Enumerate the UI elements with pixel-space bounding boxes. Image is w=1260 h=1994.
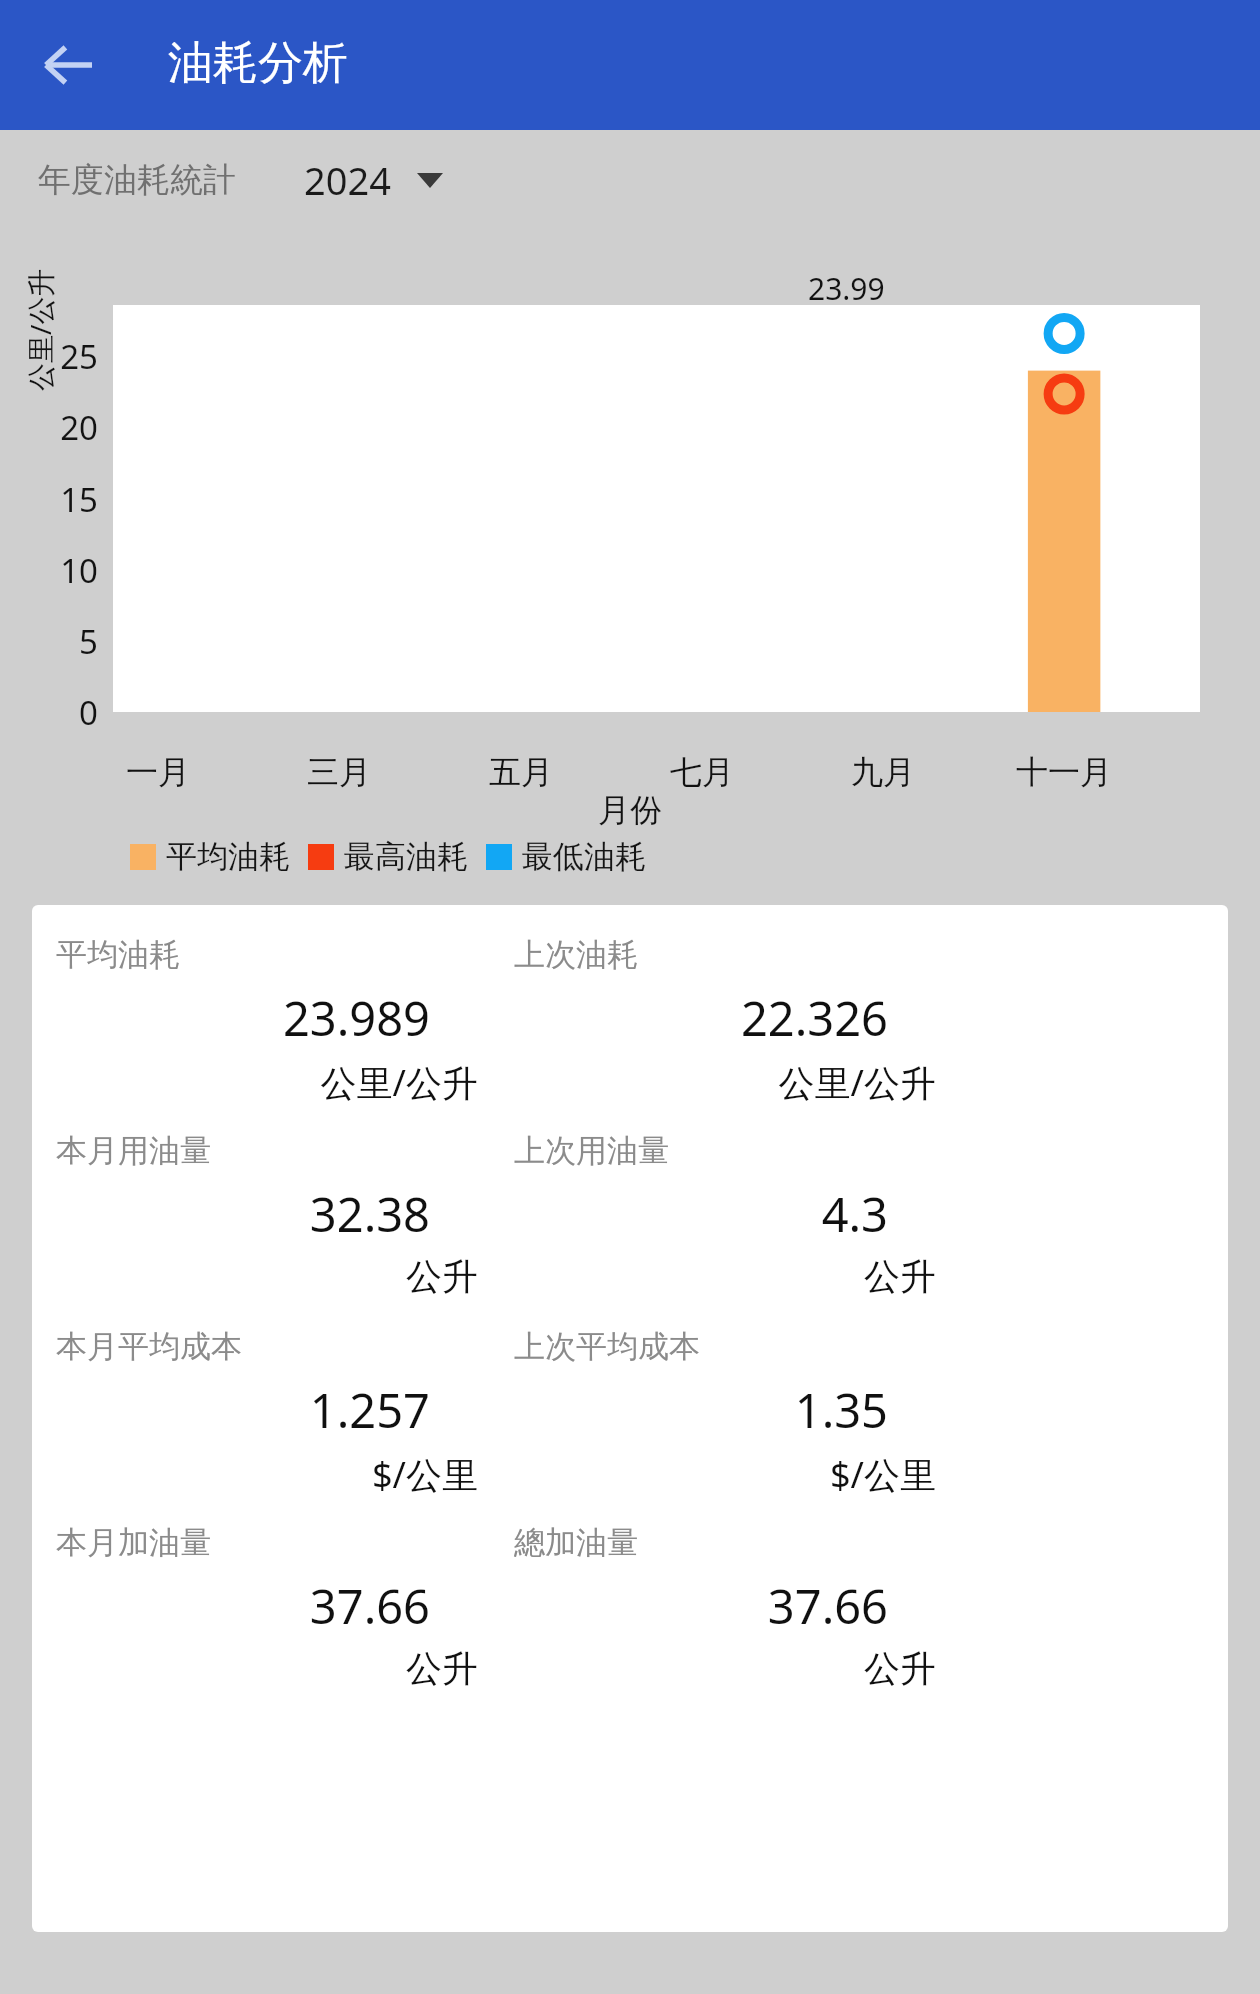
staticText: 25 — [20, 334, 98, 379]
staticText: 公里/公升 — [56, 1058, 478, 1107]
staticText: 上次油耗 — [514, 935, 638, 974]
staticText: 平均油耗 — [56, 935, 180, 974]
staticText: 上次平均成本 — [514, 1327, 700, 1366]
button[interactable]: 上次用油量 — [490, 1131, 948, 1299]
staticText: 4.3 — [514, 1182, 888, 1246]
staticText: 九月 — [793, 752, 973, 792]
staticText: 1.257 — [56, 1378, 430, 1442]
staticText: 十一月 — [974, 752, 1154, 792]
staticText: 15 — [20, 477, 98, 522]
staticText: 5 — [20, 619, 98, 664]
staticText: 本月加油量 — [56, 1523, 211, 1562]
staticText: 23.989 — [56, 986, 430, 1050]
staticText: 32.38 — [56, 1182, 430, 1246]
button[interactable]: 總加油量 — [490, 1523, 948, 1691]
staticText: 37.66 — [514, 1574, 888, 1638]
button[interactable]: 2024 — [298, 146, 449, 214]
staticText: 2024 — [304, 154, 391, 206]
staticText: 本月平均成本 — [56, 1327, 242, 1366]
staticText: 1.35 — [514, 1378, 888, 1442]
staticText: 最低油耗 — [522, 837, 646, 876]
staticText: 最高油耗 — [344, 837, 468, 876]
staticText: 公升 — [514, 1254, 936, 1299]
staticText: $/公里 — [514, 1450, 936, 1499]
staticText: 公里/公升 — [21, 268, 59, 391]
staticText: $/公里 — [56, 1450, 478, 1499]
staticText: 油耗分析 — [168, 35, 348, 92]
staticText: 23.99 — [808, 268, 885, 309]
staticText: 年度油耗統計 — [38, 159, 236, 201]
staticText: 0 — [20, 690, 98, 735]
button[interactable]: 平均油耗 — [32, 935, 490, 1107]
staticText: 一月 — [68, 752, 248, 792]
staticText: 37.66 — [56, 1574, 430, 1638]
button[interactable]: 上次平均成本 — [490, 1327, 948, 1499]
button[interactable]: 本月平均成本 — [32, 1327, 490, 1499]
staticText: 七月 — [612, 752, 792, 792]
staticText: 22.326 — [514, 986, 888, 1050]
button[interactable]: 本月用油量 — [32, 1131, 490, 1299]
staticText: 10 — [20, 548, 98, 593]
staticText: 三月 — [249, 752, 429, 792]
button[interactable]: 上次油耗 — [490, 935, 948, 1107]
staticText: 總加油量 — [514, 1523, 638, 1562]
staticText: 本月用油量 — [56, 1131, 211, 1170]
button[interactable]: Back — [30, 27, 106, 103]
button[interactable]: 本月加油量 — [32, 1523, 490, 1691]
staticText: 上次用油量 — [514, 1131, 669, 1170]
staticText: 月份 — [0, 790, 1260, 830]
staticText: 公升 — [56, 1646, 478, 1691]
staticText: 公里/公升 — [514, 1058, 936, 1107]
staticText: 公升 — [514, 1646, 936, 1691]
staticText: 20 — [20, 405, 98, 450]
staticText: 平均油耗 — [166, 837, 290, 876]
staticText: 公升 — [56, 1254, 478, 1299]
staticText: 五月 — [431, 752, 611, 792]
